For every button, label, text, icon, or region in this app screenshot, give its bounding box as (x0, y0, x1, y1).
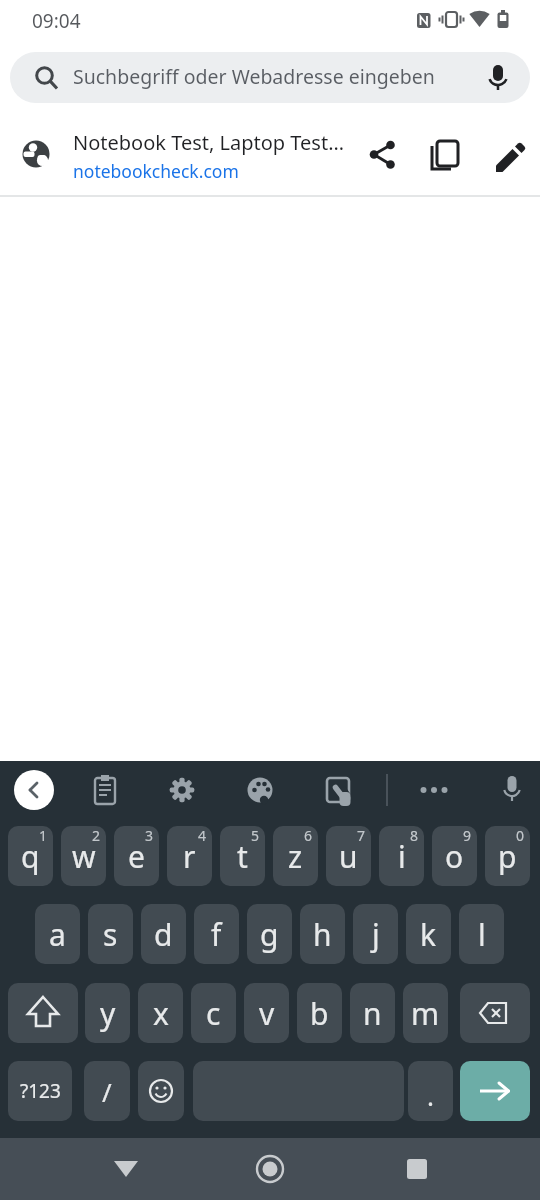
button[interactable]: t (220, 826, 265, 886)
staticText: n (363, 993, 382, 1034)
staticText: 2 (92, 826, 101, 845)
button[interactable]: f (194, 904, 239, 964)
button[interactable] (162, 770, 202, 810)
staticText: u (339, 836, 358, 877)
button[interactable]: v (244, 983, 289, 1043)
staticText: c (206, 993, 221, 1034)
staticText: 0 (516, 826, 525, 845)
button[interactable]: . (408, 1061, 453, 1121)
staticText: l (478, 914, 486, 955)
button[interactable] (492, 770, 532, 810)
staticText: i (398, 836, 406, 877)
button[interactable] (102, 1145, 150, 1193)
button[interactable]: p (485, 826, 530, 886)
staticText: f (211, 914, 222, 955)
button[interactable]: z (273, 826, 318, 886)
staticText: k (420, 914, 437, 955)
button[interactable] (246, 1145, 294, 1193)
button[interactable]: l (459, 904, 504, 964)
staticText: a (49, 914, 66, 955)
button[interactable]: q (8, 826, 53, 886)
staticText: s (103, 914, 118, 955)
staticText: 7 (357, 826, 366, 845)
button[interactable]: r (167, 826, 212, 886)
staticText: g (260, 914, 279, 955)
staticText: q (21, 836, 40, 877)
button[interactable]: h (300, 904, 345, 964)
button[interactable] (414, 770, 454, 810)
button[interactable]: x (138, 983, 183, 1043)
staticText: 9 (463, 826, 472, 845)
button[interactable]: ?123 (8, 1061, 72, 1121)
staticText: o (445, 836, 464, 877)
button[interactable]: b (297, 983, 342, 1043)
button[interactable]: k (406, 904, 451, 964)
staticText: Notebook Test, Laptop Test… (73, 129, 344, 156)
staticText: 3 (145, 826, 154, 845)
button[interactable]: w (61, 826, 106, 886)
button[interactable]: c (191, 983, 236, 1043)
staticText: z (288, 836, 303, 877)
staticText: p (498, 836, 517, 877)
button[interactable]: Notebook Test, Laptop Test… (0, 113, 540, 195)
button[interactable] (424, 134, 466, 176)
button[interactable] (489, 137, 531, 179)
staticText: h (313, 914, 332, 955)
button[interactable]: y (85, 983, 130, 1043)
button[interactable] (8, 983, 78, 1043)
staticText: b (310, 993, 329, 1034)
button[interactable]: m (403, 983, 448, 1043)
staticText: m (411, 993, 440, 1034)
staticText: v (259, 993, 275, 1034)
button[interactable] (460, 1061, 530, 1121)
staticText: d (154, 914, 173, 955)
button[interactable] (362, 134, 404, 176)
button[interactable]: u (326, 826, 371, 886)
button[interactable]: n (350, 983, 395, 1043)
button[interactable]: g (247, 904, 292, 964)
button[interactable]: e (114, 826, 159, 886)
staticText: 09:04 (32, 8, 81, 34)
staticText: 8 (410, 826, 419, 845)
staticText: 6 (304, 826, 313, 845)
button[interactable]: s (88, 904, 133, 964)
staticText: 1 (39, 826, 48, 845)
button[interactable]: / (84, 1061, 130, 1121)
button[interactable] (138, 1061, 184, 1121)
button[interactable]: d (141, 904, 186, 964)
staticText: 5 (251, 826, 260, 845)
button[interactable] (318, 770, 358, 810)
staticText: j (372, 914, 380, 955)
button[interactable]: j (353, 904, 398, 964)
staticText: / (102, 1074, 112, 1109)
staticText: r (183, 836, 196, 877)
button[interactable]: i (379, 826, 424, 886)
button[interactable] (460, 983, 530, 1043)
button[interactable] (14, 770, 54, 810)
button[interactable]: Suchbegriff oder Webadresse eingeben (10, 52, 530, 103)
staticText: Suchbegriff oder Webadresse eingeben (73, 63, 435, 90)
staticText: notebookcheck.com (73, 159, 239, 183)
staticText: w (72, 836, 96, 877)
staticText: t (237, 836, 248, 877)
staticText: ?123 (20, 1078, 61, 1104)
button[interactable] (393, 1145, 441, 1193)
button[interactable]: o (432, 826, 477, 886)
button[interactable]: a (35, 904, 80, 964)
button[interactable] (240, 770, 280, 810)
button[interactable] (85, 770, 125, 810)
staticText: y (100, 993, 116, 1034)
staticText: 4 (198, 826, 207, 845)
staticText: x (153, 993, 169, 1034)
staticText: e (128, 836, 145, 877)
staticText: . (427, 1078, 434, 1113)
